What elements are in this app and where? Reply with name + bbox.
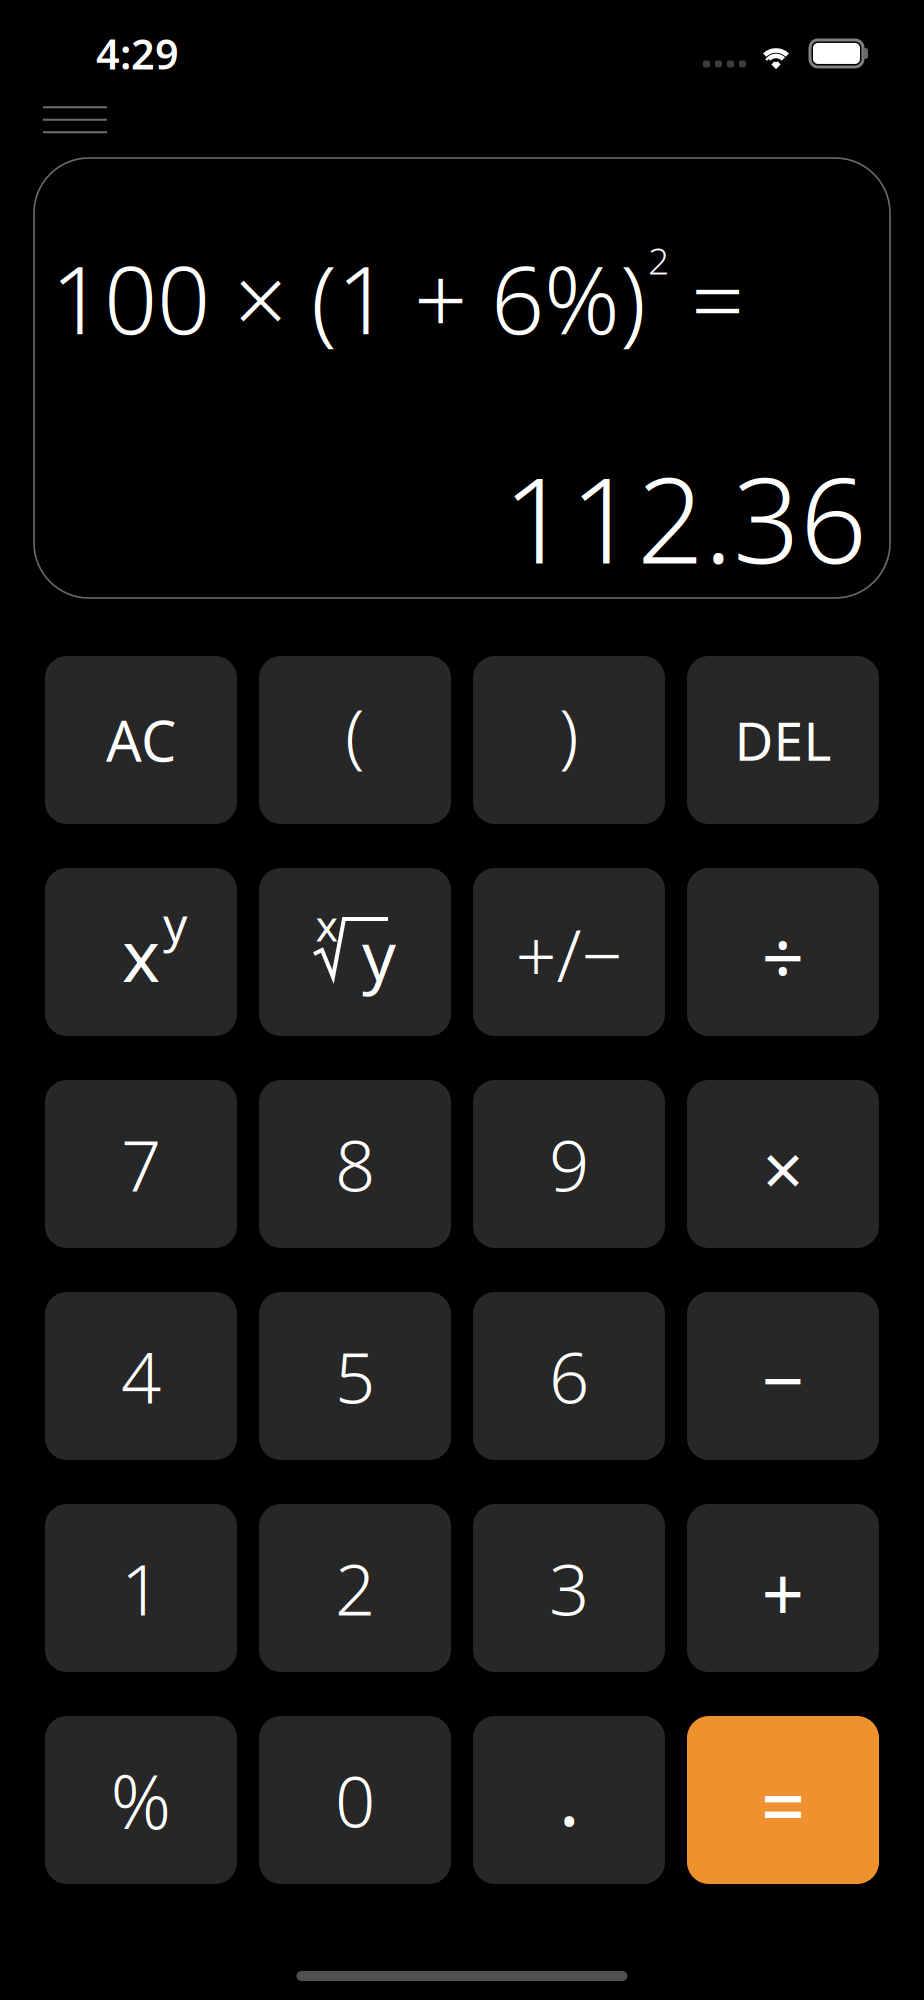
button[interactable]: . bbox=[473, 1716, 665, 1884]
staticText: 6 bbox=[549, 1329, 589, 1423]
staticText: 5 bbox=[335, 1329, 375, 1423]
staticText: . bbox=[558, 1742, 579, 1848]
staticText: 100 × (1 + 6%) bbox=[51, 236, 646, 360]
staticText: ) bbox=[559, 686, 579, 780]
staticText: 112.36 bbox=[503, 440, 867, 596]
staticText: + bbox=[761, 1542, 804, 1642]
staticText: ( bbox=[345, 686, 365, 780]
staticText: × bbox=[762, 1120, 803, 1216]
button[interactable]: x-th root of y bbox=[259, 868, 451, 1036]
staticText: AC bbox=[106, 703, 176, 777]
staticText: 0 bbox=[335, 1753, 375, 1847]
staticText: 3 bbox=[549, 1541, 589, 1635]
button[interactable]: 9 bbox=[473, 1080, 665, 1248]
staticText: y bbox=[163, 892, 187, 956]
staticText: 7 bbox=[121, 1117, 161, 1211]
button[interactable]: 7 bbox=[45, 1080, 237, 1248]
button[interactable]: +/− bbox=[473, 868, 665, 1036]
button[interactable]: x to the power of y bbox=[45, 868, 237, 1036]
button[interactable]: 5 bbox=[259, 1292, 451, 1460]
staticText: y bbox=[362, 911, 396, 999]
button[interactable]: + bbox=[687, 1504, 879, 1672]
staticText: x bbox=[122, 906, 160, 1002]
staticText: 4:29 bbox=[96, 26, 179, 81]
staticText: 4 bbox=[121, 1329, 161, 1423]
staticText: 9 bbox=[549, 1117, 589, 1211]
staticText: − bbox=[761, 1329, 804, 1429]
staticText: 1 bbox=[121, 1541, 161, 1635]
staticText: DEL bbox=[734, 705, 831, 775]
button[interactable]: Menu bbox=[27, 96, 123, 158]
button[interactable]: AC bbox=[45, 656, 237, 824]
button[interactable]: % bbox=[45, 1716, 237, 1884]
button[interactable]: × bbox=[687, 1080, 879, 1248]
button[interactable]: = bbox=[687, 1716, 879, 1884]
button[interactable]: ÷ bbox=[687, 868, 879, 1036]
button[interactable]: 0 bbox=[259, 1716, 451, 1884]
button[interactable]: 4 bbox=[45, 1292, 237, 1460]
button[interactable]: 8 bbox=[259, 1080, 451, 1248]
staticText: 8 bbox=[335, 1117, 375, 1211]
button[interactable]: − bbox=[687, 1292, 879, 1460]
button[interactable]: 1 bbox=[45, 1504, 237, 1672]
staticText: 2 bbox=[648, 235, 669, 285]
staticText: % bbox=[110, 1750, 171, 1850]
button[interactable]: DEL bbox=[687, 656, 879, 824]
staticText: +/− bbox=[515, 906, 622, 1002]
button[interactable]: 6 bbox=[473, 1292, 665, 1460]
staticText: = bbox=[761, 1754, 805, 1856]
staticText: x bbox=[315, 897, 338, 953]
button[interactable]: ( bbox=[259, 656, 451, 824]
button[interactable]: 3 bbox=[473, 1504, 665, 1672]
button[interactable]: ) bbox=[473, 656, 665, 824]
button[interactable]: 2 bbox=[259, 1504, 451, 1672]
staticText: = bbox=[667, 236, 744, 360]
staticText: 2 bbox=[335, 1541, 375, 1635]
staticText: ÷ bbox=[761, 906, 804, 1006]
